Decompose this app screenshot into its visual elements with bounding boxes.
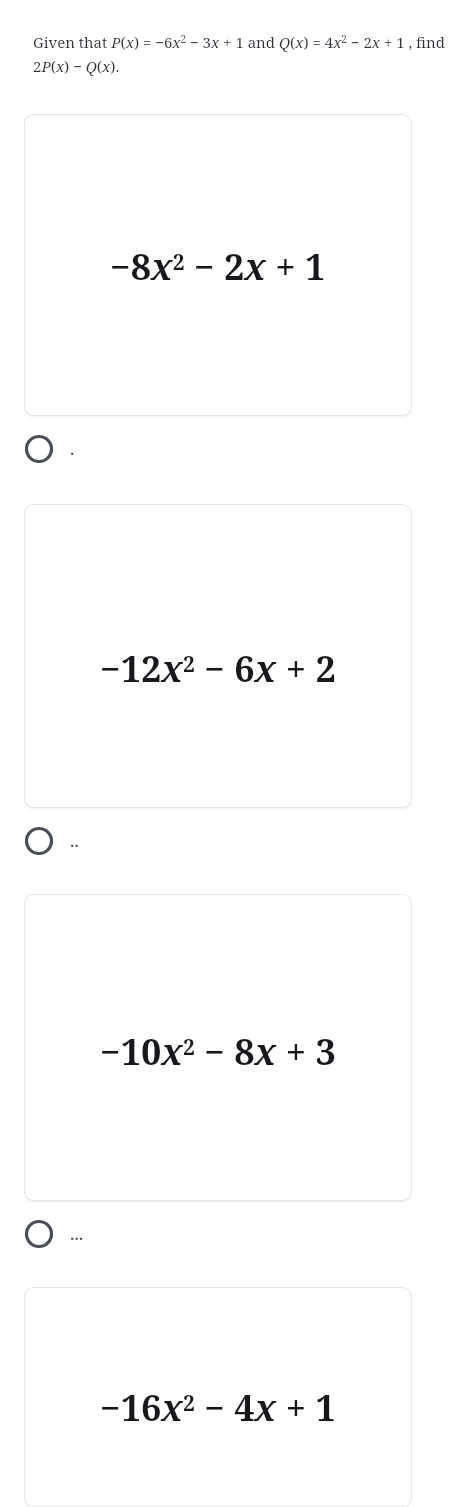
button[interactable]: −10x2 − 8x + 3 [24,894,412,1201]
button[interactable]: −8x2 − 2x + 1 [24,114,412,416]
staticText: ... [70,1224,84,1244]
staticText: −16x2 − 4x + 1 [100,1383,336,1432]
staticText: −10x2 − 8x + 3 [100,1027,336,1076]
button[interactable]: Select answer option [0,416,458,482]
staticText: . [70,439,75,459]
staticText: .. [70,831,79,851]
staticText: −8x2 − 2x + 1 [110,242,326,291]
button[interactable]: −12x2 − 6x + 2 [24,504,412,808]
button[interactable]: Select answer option [0,1201,458,1267]
button[interactable]: −16x2 − 4x + 1 [24,1287,412,1507]
staticText: Given that P(x) = −6x2 − 3x + 1 and Q(x)… [33,32,455,76]
staticText: −12x2 − 6x + 2 [100,644,336,693]
button[interactable]: Select answer option [0,808,458,874]
